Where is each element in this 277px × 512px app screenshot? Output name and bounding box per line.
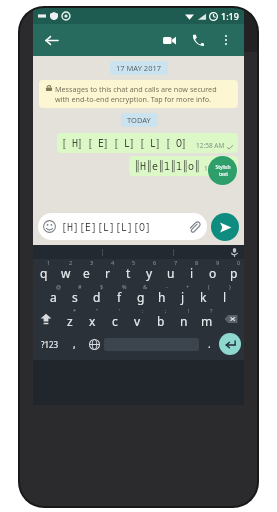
staticText: + xyxy=(186,283,190,290)
staticText: v xyxy=(134,313,141,329)
staticText: ; xyxy=(165,307,167,314)
button[interactable]: 1 xyxy=(33,259,55,283)
staticText: ' xyxy=(119,307,121,314)
staticText: 5 xyxy=(132,259,136,266)
button[interactable]: Enter xyxy=(219,333,241,355)
button[interactable]: ( xyxy=(193,283,214,307)
button[interactable]: Shift xyxy=(33,307,59,331)
staticText: ? xyxy=(210,307,213,314)
staticText: a xyxy=(50,289,57,305)
staticText: u xyxy=(167,265,175,281)
staticText: ?123 xyxy=(41,339,59,350)
button[interactable]: Send xyxy=(211,213,239,241)
staticText: m xyxy=(201,313,213,329)
staticText: z xyxy=(67,313,73,329)
button[interactable]: Stylish xyxy=(208,156,237,185)
staticText: ) xyxy=(229,283,231,290)
button[interactable]: % xyxy=(108,283,130,307)
button[interactable]: ?123 xyxy=(36,331,64,357)
button[interactable]: 9 xyxy=(202,259,223,283)
staticText: l xyxy=(223,289,227,305)
button[interactable]: 3 xyxy=(76,259,97,283)
staticText: ║H║e║l║l║o║ xyxy=(134,159,200,173)
button[interactable]: 2 xyxy=(55,259,76,283)
staticText: e xyxy=(83,265,90,281)
button[interactable]: - xyxy=(151,283,172,307)
staticText: 1 xyxy=(47,259,51,266)
staticText: p xyxy=(230,265,238,281)
button[interactable]: & xyxy=(130,283,151,307)
staticText: TODAY xyxy=(127,115,151,125)
staticText: , xyxy=(73,337,76,351)
staticText: - xyxy=(166,283,168,290)
staticText: b xyxy=(157,313,165,329)
staticText: 12:59 AM xyxy=(204,164,233,173)
button[interactable]: [H][E][L][L][O] xyxy=(38,213,207,240)
button[interactable]: 7 xyxy=(160,259,181,283)
button[interactable]: Attach xyxy=(186,219,202,235)
staticText: n xyxy=(180,313,188,329)
button[interactable]: $ xyxy=(86,283,108,307)
staticText: c xyxy=(112,313,118,329)
staticText: : xyxy=(142,307,144,314)
button[interactable]: 17 MAY 2017 xyxy=(110,61,168,75)
staticText: @ xyxy=(56,283,61,290)
button[interactable]: Backspace xyxy=(218,307,244,331)
staticText: 2 xyxy=(69,259,73,266)
button[interactable]: " xyxy=(81,307,103,331)
button[interactable]: Messages to this chat and calls are now … xyxy=(39,80,238,108)
staticText: % xyxy=(122,283,127,290)
staticText: j xyxy=(181,289,185,305)
button[interactable]: 8 xyxy=(181,259,202,283)
button[interactable]: 0 xyxy=(223,259,244,283)
button[interactable]: Change keyboard language xyxy=(84,331,104,357)
button[interactable]: 6 xyxy=(139,259,160,283)
staticText: d xyxy=(93,289,101,305)
staticText: [H][E][L][L][O] xyxy=(61,220,151,234)
button[interactable]: ! xyxy=(172,307,195,331)
button[interactable]: 5 xyxy=(118,259,139,283)
button[interactable]: More options xyxy=(215,29,237,51)
staticText: y xyxy=(146,265,153,281)
button[interactable]: ; xyxy=(149,307,172,331)
button[interactable]: 〚H〛〚E〛〚L〛〚L〛〚O〛 xyxy=(57,133,238,153)
button[interactable]: Back xyxy=(40,29,62,51)
button[interactable]: . xyxy=(199,331,219,357)
button[interactable]: Call xyxy=(186,28,210,52)
staticText: 6 xyxy=(153,259,157,266)
button[interactable]: + xyxy=(172,283,193,307)
staticText: o xyxy=(209,265,217,281)
staticText: . xyxy=(208,337,211,351)
button[interactable]: ? xyxy=(195,307,218,331)
staticText: $ xyxy=(100,283,104,290)
button[interactable]: Video call xyxy=(157,28,181,52)
button[interactable]: 4 xyxy=(97,259,118,283)
staticText: 9 xyxy=(216,259,220,266)
staticText: s xyxy=(72,289,78,305)
staticText: Messages to this chat and calls are now … xyxy=(55,84,231,104)
staticText: 〚H〛〚E〛〚L〛〚L〛〚O〛 xyxy=(62,136,192,150)
staticText: 12:58 AM xyxy=(196,141,225,150)
button[interactable]: ' xyxy=(103,307,126,331)
staticText: 3 xyxy=(90,259,94,266)
button[interactable]: TODAY xyxy=(121,113,157,127)
staticText: w xyxy=(61,265,71,281)
button[interactable]: @ xyxy=(42,283,64,307)
button[interactable]: , xyxy=(64,331,84,357)
staticText: # xyxy=(78,283,82,290)
button[interactable]: Voice input xyxy=(174,245,244,259)
staticText: ! xyxy=(188,307,190,314)
staticText: i xyxy=(190,265,194,281)
button[interactable]: # xyxy=(64,283,86,307)
staticText: t xyxy=(126,265,131,281)
staticText: x xyxy=(89,313,96,329)
staticText: 4 xyxy=(111,259,115,266)
button[interactable]: ║H║e║l║l║o║ xyxy=(129,156,238,176)
button[interactable]: * xyxy=(59,307,81,331)
button[interactable]: ) xyxy=(214,283,235,307)
button[interactable]: : xyxy=(126,307,149,331)
staticText: g xyxy=(137,289,145,305)
